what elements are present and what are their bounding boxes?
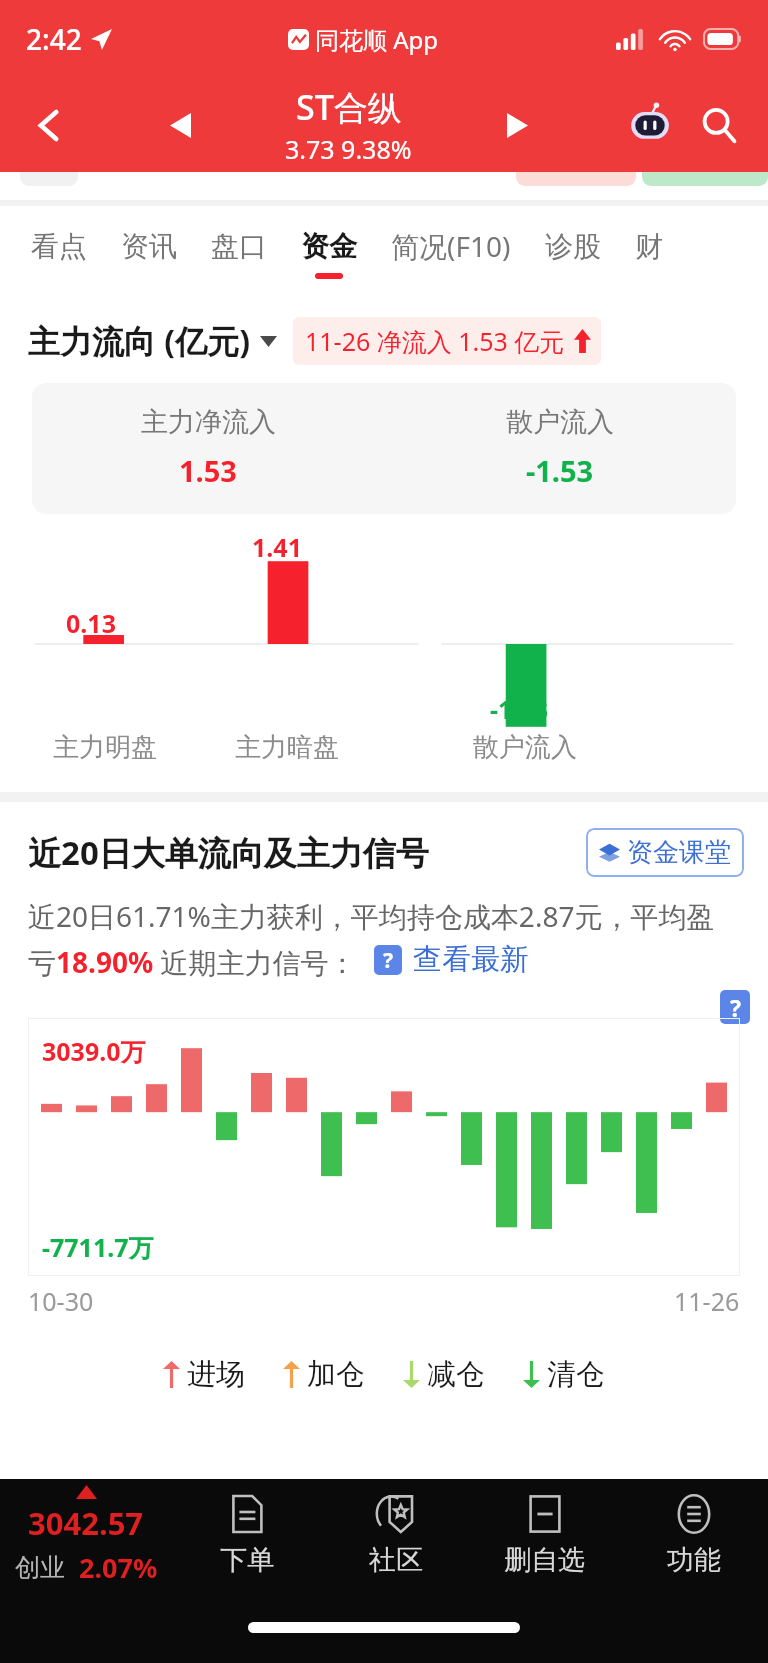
button[interactable]: 资金 bbox=[284, 206, 374, 301]
staticText: 社区 bbox=[369, 1543, 423, 1577]
staticText: 查看最新 bbox=[413, 941, 529, 978]
staticText: 0.13 bbox=[66, 606, 116, 640]
button[interactable]: 诊股 bbox=[528, 206, 618, 301]
staticText: 功能 bbox=[667, 1543, 721, 1577]
staticText: 诊股 bbox=[545, 229, 601, 264]
button[interactable]: Back bbox=[22, 98, 76, 152]
button[interactable]: 删自选 bbox=[470, 1479, 619, 1591]
staticText: 散户流入 bbox=[473, 731, 577, 764]
button[interactable]: Help bbox=[720, 990, 750, 1024]
staticText: 10-30 bbox=[28, 1284, 94, 1318]
staticText: 下单 bbox=[220, 1543, 274, 1577]
button[interactable]: 3042.57 bbox=[0, 1479, 172, 1591]
staticText: 近20日大单流向及主力信号 bbox=[28, 830, 429, 875]
button[interactable]: AI assistant bbox=[622, 97, 678, 153]
staticText: 资金 bbox=[301, 229, 357, 264]
staticText: 主力流向 (亿元) bbox=[28, 319, 251, 363]
staticText: 删自选 bbox=[504, 1543, 585, 1577]
staticText: 同花顺 App bbox=[315, 23, 439, 56]
button[interactable]: 功能 bbox=[619, 1479, 768, 1591]
staticText: 财 bbox=[635, 229, 663, 264]
button[interactable]: Search bbox=[692, 98, 746, 152]
button[interactable]: 资金课堂 bbox=[586, 828, 744, 877]
staticText: 简况(F10) bbox=[391, 227, 511, 265]
staticText: 主力暗盘 bbox=[235, 731, 339, 764]
staticText: 资讯 bbox=[121, 229, 177, 264]
staticText: 11-26 bbox=[674, 1284, 740, 1318]
button[interactable]: 主力流向 (亿元) bbox=[28, 319, 277, 363]
staticText: 11-26 净流入 1.53 亿元 bbox=[305, 324, 565, 358]
staticText: -1.53 bbox=[490, 692, 548, 726]
staticText: 近20日61.71%主力获利，平均持仓成本2.87元，平均盈亏18.90% 近期… bbox=[28, 897, 740, 981]
button[interactable]: 社区 bbox=[321, 1479, 470, 1591]
staticText: 进场 bbox=[187, 1356, 245, 1393]
staticText: -1.53 bbox=[526, 451, 594, 490]
button[interactable]: Previous stock bbox=[153, 98, 207, 152]
button[interactable]: 财 bbox=[618, 206, 680, 301]
staticText: 3.73 9.38% bbox=[285, 132, 412, 166]
button[interactable]: 简况(F10) bbox=[374, 206, 528, 301]
button[interactable]: Next stock bbox=[490, 98, 544, 152]
staticText: -7711.7万 bbox=[42, 1230, 154, 1264]
staticText: 主力明盘 bbox=[53, 731, 157, 764]
staticText: 创业 bbox=[15, 1552, 65, 1583]
staticText: 散户流入 bbox=[506, 405, 614, 439]
button[interactable]: 11-26 净流入 1.53 亿元 bbox=[293, 317, 601, 365]
staticText: 2.07% bbox=[79, 1549, 158, 1586]
staticText: 加仓 bbox=[307, 1356, 365, 1393]
staticText: 1.41 bbox=[252, 530, 302, 564]
button[interactable]: ? bbox=[374, 941, 529, 978]
staticText: ? bbox=[730, 992, 741, 1023]
button[interactable]: 下单 bbox=[172, 1479, 321, 1591]
staticText: 减仓 bbox=[427, 1356, 485, 1393]
staticText: 清仓 bbox=[547, 1356, 605, 1393]
staticText: 2:42 bbox=[26, 20, 82, 58]
button[interactable]: 看点 bbox=[14, 206, 104, 301]
button[interactable]: 资讯 bbox=[104, 206, 194, 301]
staticText: 主力净流入 bbox=[141, 405, 276, 439]
staticText: 1.53 bbox=[179, 451, 237, 490]
staticText: 资金课堂 bbox=[627, 836, 731, 869]
staticText: 盘口 bbox=[211, 229, 267, 264]
staticText: 3042.57 bbox=[28, 1502, 144, 1544]
staticText: ST合纵 bbox=[296, 84, 402, 130]
staticText: 看点 bbox=[31, 229, 87, 264]
button[interactable]: 盘口 bbox=[194, 206, 284, 301]
staticText: ? bbox=[383, 946, 394, 975]
staticText: 3039.0万 bbox=[42, 1034, 146, 1068]
